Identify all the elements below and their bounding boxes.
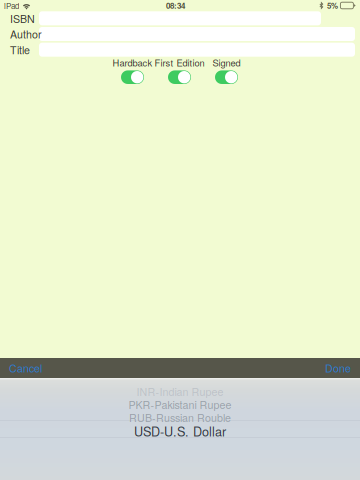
staticText: iPad xyxy=(4,0,19,11)
staticText: First Edition xyxy=(154,56,204,69)
staticText: PKR-Pakistani Rupee xyxy=(128,397,231,412)
button[interactable] xyxy=(39,43,355,57)
staticText: Title xyxy=(10,42,30,57)
button[interactable]: Done xyxy=(291,358,360,378)
staticText: ISBN xyxy=(10,11,35,26)
button[interactable]: Hardback xyxy=(121,58,144,84)
button[interactable] xyxy=(39,11,321,25)
staticText: Signed xyxy=(212,56,240,69)
staticText: Done xyxy=(325,360,351,376)
button[interactable] xyxy=(39,27,355,41)
staticText: Cancel xyxy=(9,360,42,376)
button[interactable]: Cancel xyxy=(0,358,69,378)
staticText: USD-U.S. Dollar xyxy=(134,422,226,440)
staticText: INR-Indian Rupee xyxy=(136,384,223,399)
staticText: Author xyxy=(10,26,42,42)
staticText: 5% xyxy=(327,0,338,11)
button[interactable]: Signed xyxy=(215,58,238,84)
staticText: 08:34 xyxy=(166,0,185,11)
staticText: Hardback xyxy=(112,56,152,69)
staticText: RUB-Russian Rouble xyxy=(129,410,231,425)
button[interactable]: First Edition xyxy=(168,58,191,84)
